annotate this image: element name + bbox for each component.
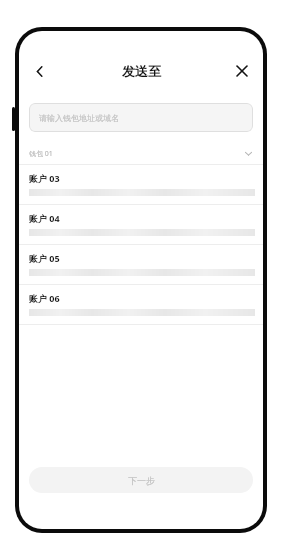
staticText: 发送至 bbox=[122, 63, 161, 79]
staticText: 账户 04 bbox=[29, 212, 60, 224]
button[interactable]: 下一步 bbox=[29, 467, 253, 493]
button[interactable]: 账户 05 bbox=[19, 245, 263, 285]
button[interactable]: 账户 03 bbox=[19, 165, 263, 205]
button[interactable]: Close bbox=[226, 55, 258, 87]
button[interactable]: 账户 06 bbox=[19, 285, 263, 325]
button[interactable]: 钱包 01 bbox=[19, 143, 263, 164]
staticText: 账户 05 bbox=[29, 252, 60, 264]
staticText: 账户 06 bbox=[29, 292, 60, 304]
button[interactable]: Back bbox=[22, 54, 56, 88]
staticText: 账户 03 bbox=[29, 172, 60, 184]
button[interactable]: 请输入钱包地址或域名 bbox=[29, 103, 253, 132]
staticText: 钱包 01 bbox=[29, 149, 53, 159]
button[interactable]: 账户 04 bbox=[19, 205, 263, 245]
staticText: 请输入钱包地址或域名 bbox=[39, 113, 119, 123]
staticText: 下一步 bbox=[128, 475, 155, 486]
